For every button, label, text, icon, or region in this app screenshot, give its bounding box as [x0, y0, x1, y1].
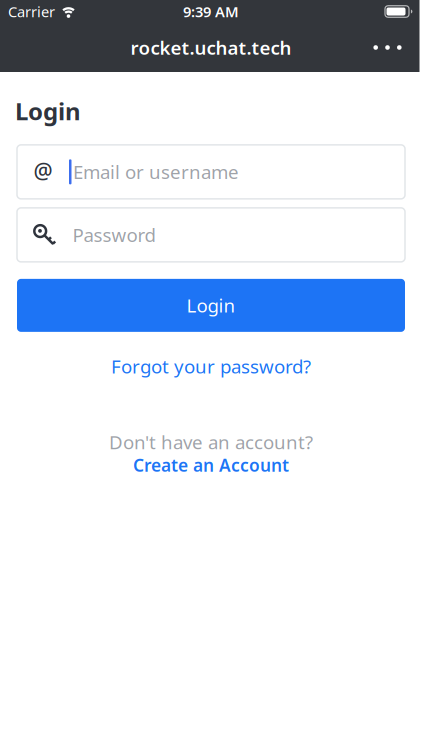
staticText: Create an Account: [133, 453, 289, 476]
staticText: @: [33, 156, 52, 184]
staticText: Email or username: [73, 159, 239, 184]
button[interactable]: Login: [17, 279, 405, 332]
button[interactable]: Email or username: [17, 145, 405, 199]
button[interactable]: Create an Account: [133, 453, 289, 476]
staticText: Carrier: [8, 2, 55, 21]
staticText: Don't have an account?: [109, 430, 313, 454]
staticText: Forgot your password?: [111, 354, 311, 379]
button[interactable]: Forgot your password?: [111, 354, 311, 379]
staticText: Login: [15, 95, 81, 127]
staticText: Password: [72, 222, 155, 247]
button[interactable]: More options: [359, 23, 422, 72]
button[interactable]: Password: [17, 208, 405, 262]
staticText: Login: [186, 293, 235, 318]
staticText: rocket.uchat.tech: [130, 35, 291, 60]
staticText: 9:39 AM: [183, 2, 239, 21]
